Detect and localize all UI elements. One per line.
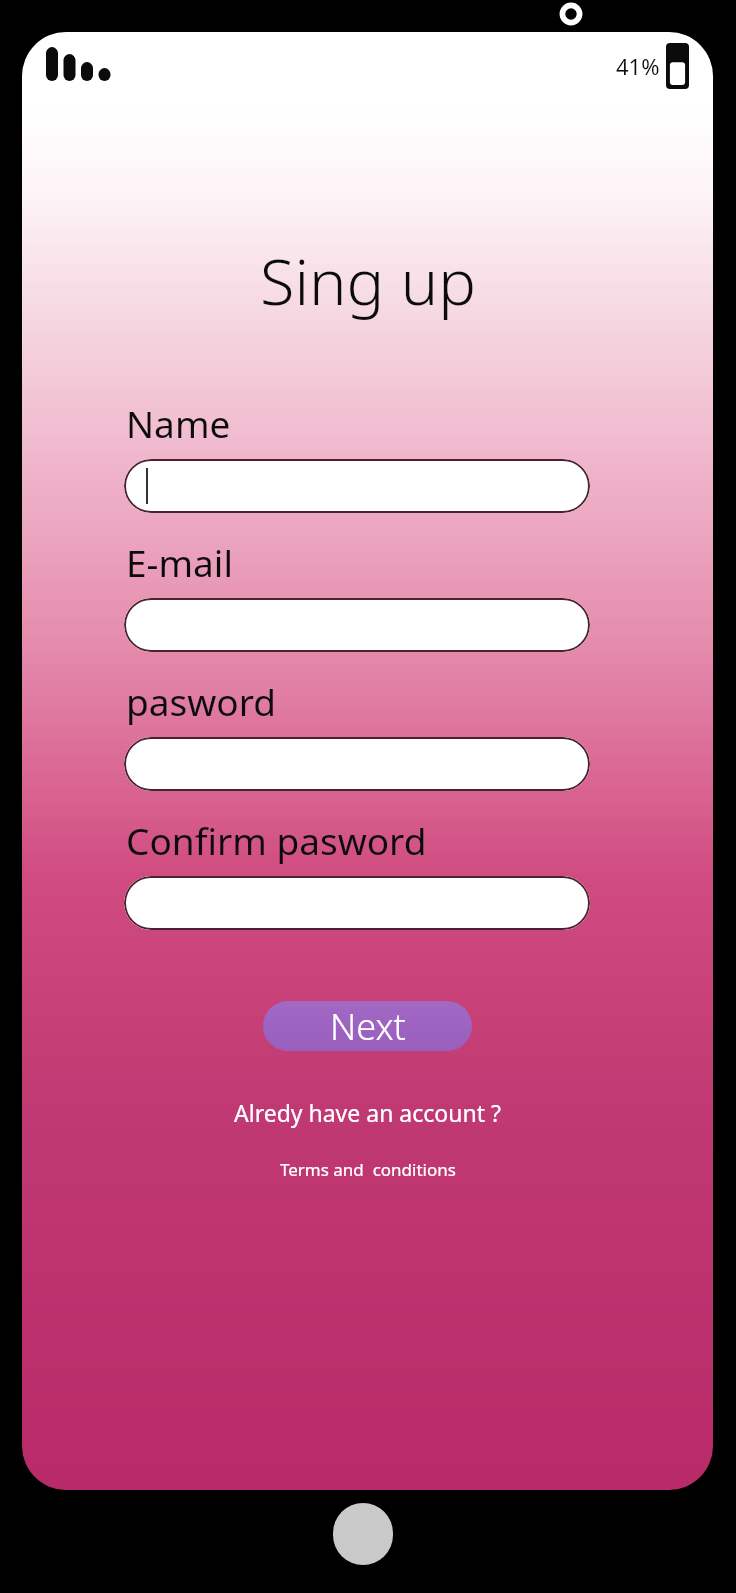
staticText: E-mail	[126, 537, 233, 587]
staticText: pasword	[126, 676, 276, 726]
staticText: Confirm pasword	[126, 815, 427, 865]
button[interactable]	[124, 876, 590, 930]
staticText: Name	[126, 398, 231, 448]
button[interactable]	[124, 598, 590, 652]
button[interactable]: Alredy have an account ?	[224, 1093, 511, 1132]
other: Battery 41 percent	[666, 43, 689, 89]
staticText: 41%	[616, 51, 660, 81]
button[interactable]: Next	[263, 1001, 472, 1051]
button[interactable]	[124, 459, 590, 513]
button[interactable]: Terms and conditions	[270, 1154, 466, 1185]
staticText: Sing up	[260, 238, 476, 324]
other: Signal strength	[46, 48, 116, 84]
button[interactable]: Home	[333, 1503, 393, 1565]
staticText: Next	[330, 1002, 406, 1051]
button[interactable]	[124, 737, 590, 791]
staticText: Alredy have an account ?	[234, 1097, 501, 1128]
staticText: Terms and conditions	[280, 1158, 456, 1181]
